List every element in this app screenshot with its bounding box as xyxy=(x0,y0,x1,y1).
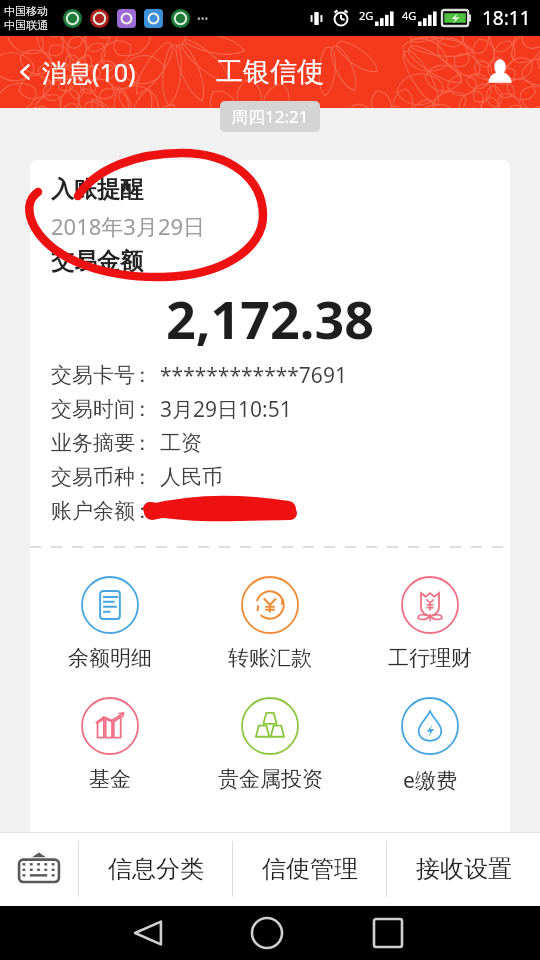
button[interactable]: Back xyxy=(122,907,174,959)
staticText: ： xyxy=(132,498,153,524)
staticText: 入账提醒 xyxy=(51,175,143,204)
staticText: 2018年3月29日 xyxy=(51,211,206,241)
button[interactable]: 信息分类 xyxy=(79,832,232,906)
staticText: 中国联通 xyxy=(4,18,48,32)
button[interactable]: 信使管理 xyxy=(233,832,386,906)
staticText: 业务摘要 xyxy=(51,430,132,456)
staticText: 2,172.38 xyxy=(166,283,374,354)
button[interactable]: 贵金属投资 xyxy=(190,697,350,792)
button[interactable]: 消息(10) xyxy=(14,36,136,108)
staticText: 余额明细 xyxy=(68,645,152,671)
button[interactable]: Profile xyxy=(474,46,526,98)
staticText: 周四12:21 xyxy=(231,105,309,128)
staticText: 2G xyxy=(359,8,374,23)
staticText: 基金 xyxy=(89,766,131,792)
staticText: e缴费 xyxy=(403,766,457,795)
staticText: 贵金属投资 xyxy=(218,766,323,792)
button[interactable]: e缴费 xyxy=(350,697,510,795)
button[interactable]: Keyboard xyxy=(0,832,78,906)
staticText: 18:11 xyxy=(482,5,531,31)
staticText: 3月29日10:51 xyxy=(160,395,292,424)
staticText: 工银信使 xyxy=(216,55,324,89)
staticText: 中国移动 xyxy=(4,4,48,18)
staticText: 4G xyxy=(402,8,417,23)
staticText: 人民币 xyxy=(160,464,223,490)
staticText: ： xyxy=(132,464,153,490)
button[interactable]: 接收设置 xyxy=(387,832,540,906)
staticText: 交易金额 xyxy=(51,247,143,276)
staticText: 工资 xyxy=(160,430,202,456)
staticText: 信使管理 xyxy=(262,854,358,884)
button[interactable]: Home xyxy=(241,907,293,959)
staticText: ************7691 xyxy=(160,361,347,390)
staticText: 消息(10) xyxy=(42,55,136,89)
staticText: ： xyxy=(132,430,153,456)
staticText: ： xyxy=(132,362,153,388)
staticText: ••• xyxy=(197,12,209,26)
staticText: ： xyxy=(132,396,153,422)
staticText: 交易时间 xyxy=(51,396,132,422)
staticText: 转账汇款 xyxy=(228,645,312,671)
staticText: 工行理财 xyxy=(388,645,472,671)
button[interactable]: 工行理财 xyxy=(350,576,510,671)
button[interactable]: 基金 xyxy=(30,697,190,792)
staticText: 账户余额 xyxy=(51,498,132,524)
button[interactable]: 转账汇款 xyxy=(190,576,350,671)
staticText: 交易币种 xyxy=(51,464,132,490)
staticText: 信息分类 xyxy=(108,854,204,884)
button[interactable]: 余额明细 xyxy=(30,576,190,671)
staticText: 接收设置 xyxy=(416,854,512,884)
staticText: 交易卡号 xyxy=(51,362,132,388)
button[interactable]: Recents xyxy=(362,907,414,959)
